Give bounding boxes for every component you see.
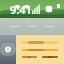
button[interactable]: Map (0, 43, 16, 56)
button[interactable]: Sunrise Ridge (22, 41, 58, 44)
button[interactable]: Dusk (22, 56, 37, 58)
button[interactable]: Night (42, 56, 58, 58)
staticText: 9:41 (10, 2, 32, 17)
staticText: Meadow Trail (14, 0, 64, 8)
button[interactable]: Golden Fields (22, 49, 58, 51)
